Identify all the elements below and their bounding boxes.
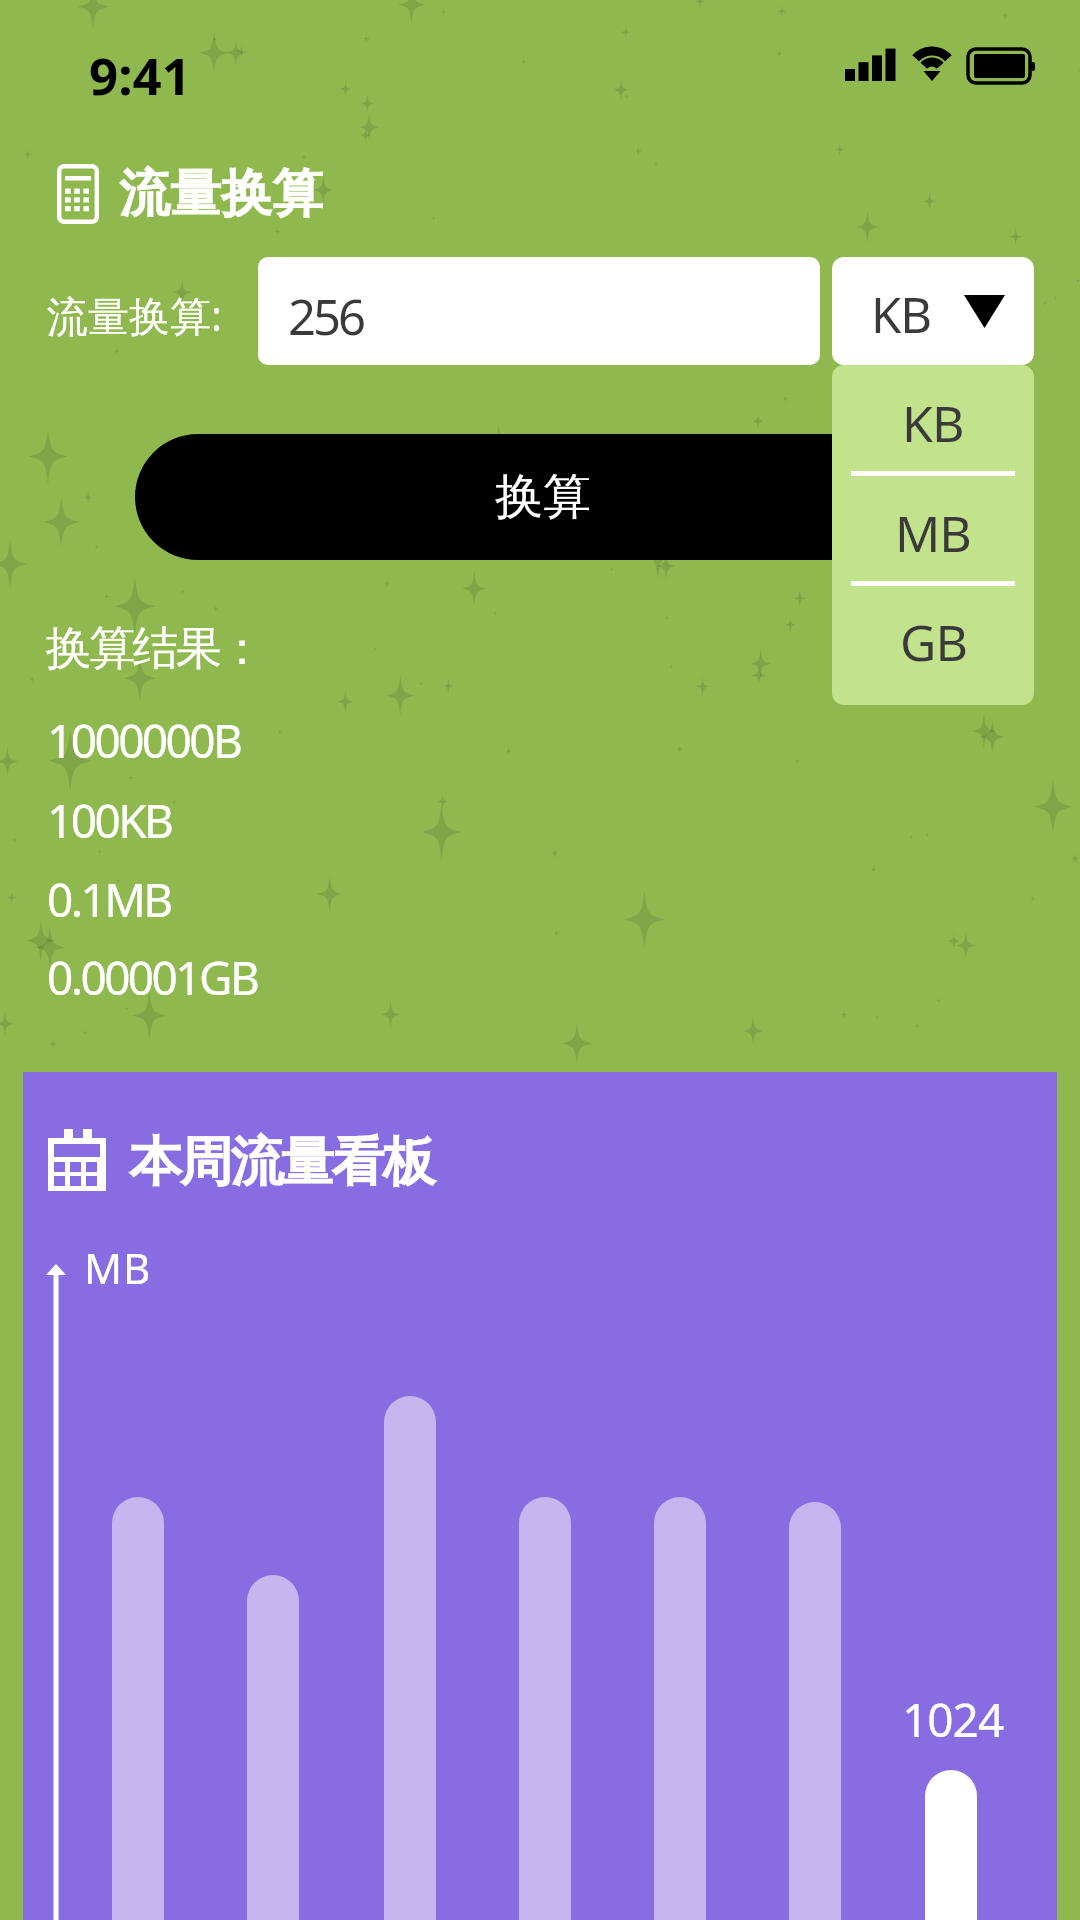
- staticText: GB: [900, 608, 967, 676]
- button[interactable]: KB: [832, 365, 1034, 471]
- staticText: 256: [288, 283, 364, 350]
- staticText: 换算: [495, 467, 591, 527]
- button[interactable]: 换算: [135, 434, 951, 560]
- staticText: MB: [895, 499, 971, 567]
- staticText: 流量换算:: [47, 287, 222, 343]
- other: Status icons: [845, 44, 1035, 88]
- button[interactable]: GB: [832, 586, 1034, 701]
- staticText: 0.1MB: [47, 868, 171, 931]
- staticText: 流量换算: [119, 162, 323, 226]
- staticText: 1000000B: [47, 709, 241, 772]
- button[interactable]: 流量换算: [57, 162, 323, 226]
- staticText: KB: [902, 389, 964, 457]
- staticText: 1024: [902, 1688, 1004, 1751]
- staticText: 100KB: [47, 789, 172, 852]
- staticText: 换算结果：: [47, 620, 264, 678]
- staticText: 9:41: [89, 40, 191, 109]
- button[interactable]: MB: [832, 476, 1034, 581]
- staticText: 本周流量看板: [129, 1129, 434, 1196]
- staticText: KB: [871, 281, 932, 348]
- staticText: 0.00001GB: [47, 946, 258, 1009]
- button[interactable]: KB: [832, 257, 1034, 365]
- button[interactable]: 256: [258, 257, 820, 365]
- staticText: MB: [84, 1239, 152, 1296]
